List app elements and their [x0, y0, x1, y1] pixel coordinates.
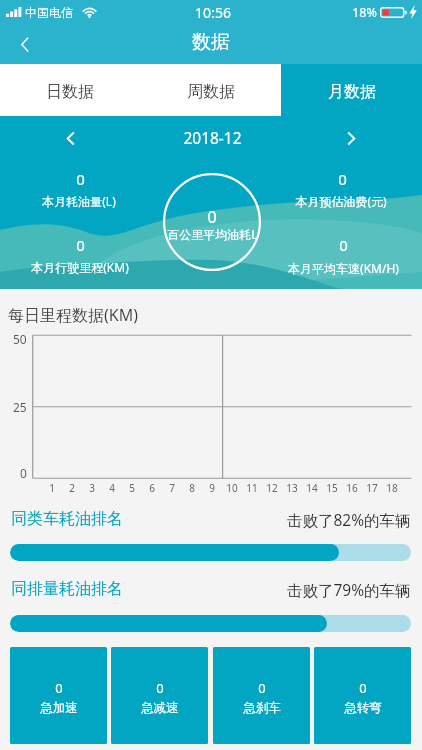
- staticText: 击败了79%的车辆: [287, 579, 411, 600]
- staticText: 8: [189, 481, 195, 495]
- staticText: 7: [169, 481, 175, 495]
- staticText: 中国电信: [25, 5, 73, 20]
- staticText: 18: [386, 481, 398, 495]
- button[interactable]: 0: [213, 647, 310, 744]
- staticText: 0: [359, 679, 367, 697]
- staticText: 18%: [352, 4, 377, 21]
- staticText: 0: [20, 465, 27, 481]
- staticText: 15: [326, 481, 338, 495]
- staticText: 0: [258, 679, 266, 697]
- button[interactable]: Previous month: [40, 116, 102, 160]
- staticText: 2018-12: [183, 127, 242, 148]
- staticText: 10: [226, 481, 238, 495]
- button[interactable]: Back: [0, 24, 49, 64]
- staticText: 50: [13, 331, 27, 347]
- staticText: 百公里平均油耗L: [167, 226, 258, 242]
- staticText: 同排量耗油排名: [11, 579, 123, 599]
- staticText: 9: [209, 481, 215, 495]
- staticText: 本月平均车速(KM/H): [288, 260, 399, 276]
- staticText: 同类车耗油排名: [11, 509, 123, 529]
- staticText: 日数据: [46, 82, 94, 102]
- staticText: 0: [55, 679, 63, 697]
- button[interactable]: 0: [111, 647, 208, 744]
- staticText: 急转弯: [344, 700, 382, 716]
- button[interactable]: 0: [314, 647, 411, 744]
- staticText: 本月预估油费(元): [295, 193, 387, 209]
- staticText: 0: [76, 169, 85, 189]
- staticText: 击败了82%的车辆: [287, 509, 411, 530]
- staticText: 0: [207, 206, 217, 228]
- staticText: 0: [338, 169, 347, 189]
- staticText: 每日里程数据(KM): [8, 304, 139, 326]
- staticText: 1: [49, 481, 55, 495]
- staticText: 周数据: [187, 82, 235, 102]
- staticText: 月数据: [328, 82, 376, 102]
- button[interactable]: 日数据: [0, 64, 140, 116]
- staticText: 4: [109, 481, 115, 495]
- staticText: 25: [13, 399, 27, 415]
- staticText: 3: [89, 481, 95, 495]
- staticText: 11: [246, 481, 258, 495]
- staticText: 16: [346, 481, 358, 495]
- staticText: 13: [286, 481, 298, 495]
- staticText: 2: [69, 481, 75, 495]
- staticText: 12: [266, 481, 278, 495]
- staticText: 17: [366, 481, 378, 495]
- staticText: 0: [76, 235, 85, 255]
- staticText: 10:56: [195, 3, 231, 22]
- staticText: 急减速: [141, 700, 179, 716]
- button[interactable]: Next month: [320, 116, 382, 160]
- button[interactable]: 周数据: [140, 64, 281, 116]
- staticText: 5: [129, 481, 135, 495]
- staticText: 0: [339, 235, 348, 255]
- button[interactable]: 0: [10, 647, 107, 744]
- button[interactable]: 月数据: [281, 64, 422, 116]
- staticText: 本月行驶里程(KM): [31, 259, 129, 275]
- staticText: 14: [306, 481, 318, 495]
- staticText: 6: [149, 481, 155, 495]
- staticText: 急刹车: [243, 700, 281, 716]
- staticText: 0: [156, 679, 164, 697]
- staticText: 数据: [192, 30, 230, 54]
- staticText: 急加速: [40, 700, 78, 716]
- staticText: 本月耗油量(L): [42, 193, 116, 209]
